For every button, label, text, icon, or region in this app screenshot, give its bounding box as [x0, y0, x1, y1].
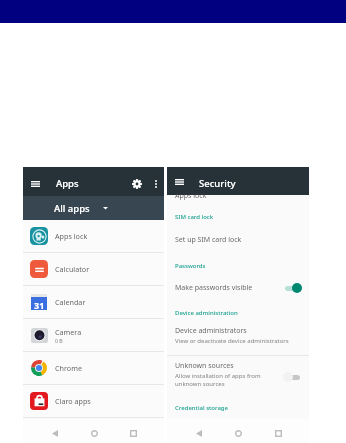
staticText: Unknown sources — [175, 361, 234, 371]
staticText: 31 — [34, 299, 45, 311]
button[interactable]: Back — [191, 425, 207, 441]
button[interactable]: Toggle off — [283, 371, 302, 383]
staticText: Set up SIM card lock — [175, 235, 242, 245]
staticText: View or deactivate device administrators — [175, 337, 289, 345]
button[interactable]: Settings — [127, 174, 147, 194]
staticText: Apps lock — [55, 231, 88, 241]
staticText: 0 B — [55, 337, 63, 344]
button[interactable]: Apps lock — [23, 220, 164, 252]
button[interactable]: Recent apps — [125, 425, 141, 441]
button[interactable]: Set up SIM card lock — [167, 231, 309, 249]
button[interactable]: Home — [86, 425, 102, 441]
button[interactable]: Recent apps — [270, 425, 286, 441]
button[interactable]: Open navigation menu — [24, 173, 46, 195]
button[interactable]: Toggle on — [283, 282, 302, 294]
staticText: Calendar — [55, 297, 86, 307]
button[interactable]: Calculator — [23, 253, 164, 285]
button[interactable]: Device administrators — [167, 326, 309, 345]
button[interactable]: Unknown sources — [167, 361, 309, 388]
staticText: Apps lock — [175, 191, 207, 201]
button[interactable]: Camera — [23, 319, 164, 351]
button[interactable]: More options — [147, 175, 164, 192]
staticText: Camera — [55, 327, 82, 337]
staticText: Make passwords visible — [175, 283, 253, 293]
staticText: Calculator — [55, 264, 90, 274]
button[interactable]: All apps — [23, 196, 164, 220]
button[interactable]: 31 — [23, 286, 164, 318]
staticText: Device administration — [175, 309, 238, 317]
staticText: Device administrators — [175, 326, 247, 336]
button[interactable]: Open navigation menu — [169, 172, 189, 192]
button[interactable]: Back — [47, 425, 63, 441]
button[interactable]: Claro apps — [23, 385, 164, 417]
staticText: Passwords — [175, 262, 206, 270]
button[interactable]: Home — [230, 425, 246, 441]
staticText: Claro apps — [55, 396, 91, 406]
staticText: All apps — [54, 202, 90, 215]
staticText: Credential storage — [175, 404, 229, 412]
staticText: Allow installation of apps from unknown … — [175, 372, 283, 388]
staticText: SIM card lock — [175, 213, 214, 221]
staticText: Security — [199, 177, 236, 190]
button[interactable]: Chrome — [23, 352, 164, 384]
staticText: Chrome — [55, 363, 82, 373]
button[interactable]: Make passwords visible — [167, 279, 309, 297]
staticText: Apps — [56, 177, 79, 190]
